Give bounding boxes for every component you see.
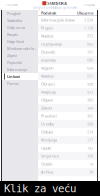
staticText: Zapisi [7,53,17,58]
staticText: Klik za veću [4,182,76,194]
staticText: 142 [87,145,93,151]
button[interactable]: Pregled [2,10,38,17]
staticText: Informacijski listovi [41,17,75,23]
staticText: 2 034 [84,17,93,23]
staticText: Pregled [7,11,20,16]
staticText: 842 [87,41,93,47]
button[interactable]: Informacije [2,66,38,73]
staticText: 74 [89,161,93,167]
staticText: Statistika [7,18,22,23]
staticText: 688 [87,57,93,63]
button[interactable]: Pomoc [2,80,38,87]
button[interactable]: Misljenja [38,136,97,144]
button[interactable]: Upute [38,144,97,152]
staticText: 973 [87,33,93,39]
staticText: STATISTIKA [47,1,67,6]
button[interactable]: Objave [38,96,97,104]
staticText: Uredbe [41,121,54,127]
staticText: Dozvole [41,49,55,55]
staticText: 551 [87,73,93,79]
staticText: Edge Vesti [7,39,24,44]
staticText: Ocjenjivanje [41,41,62,47]
staticText: POCETNA [6,3,18,7]
button[interactable]: Natjecaji [38,88,97,96]
button[interactable]: Odluke [38,128,97,136]
button[interactable]: Informacijski listovi [38,16,97,24]
staticText: 498 [87,81,93,87]
staticText: 301 [87,113,93,119]
button[interactable]: Ocjenjivanje [38,40,97,48]
staticText: Medunarodni brodski [7,46,38,51]
button[interactable]: Dozvole [38,48,97,56]
staticText: 38 [89,169,93,175]
staticText: Nadzor [41,33,54,39]
button[interactable]: Popisniki [2,59,38,66]
button[interactable]: Uredbe [38,120,97,128]
staticText: Popisniki [7,60,22,65]
staticText: PRIJAVA [84,3,95,7]
staticText: 604 [87,65,93,71]
staticText: Obrasci [41,81,55,87]
button[interactable]: Pravilnici [38,112,97,120]
staticText: 1 118 [84,25,93,31]
staticText: Pomoc [7,81,19,86]
staticText: Raspis [7,32,18,37]
button[interactable]: Registri [38,64,97,72]
button[interactable]: Zakoni [38,104,97,112]
staticText: Gdje se na [7,25,25,30]
button[interactable]: Izvjestaji [38,56,97,64]
button[interactable]: Linkovi [2,73,38,80]
staticText: 108 [87,153,93,159]
staticText: Odluke [41,129,53,135]
button[interactable]: Katalozi [38,72,97,80]
staticText: Linkovi [7,74,20,79]
button[interactable]: Statistika [2,17,38,24]
staticText: Arhiva [41,169,53,175]
staticText: Katalozi [41,73,54,79]
button[interactable]: Edge Vesti [2,38,38,45]
staticText: Natjecaji [41,89,56,95]
button[interactable]: Ostalo [38,160,97,168]
staticText: Pravilnici [41,113,57,119]
button[interactable]: Raspis [2,31,38,38]
staticText: Izvjestaji [41,57,56,63]
staticText: Smjernice [41,153,59,159]
button[interactable]: Arhiva [38,168,97,176]
button[interactable]: Medunarodni brodski [2,45,38,52]
staticText: Informacije [7,67,27,72]
button[interactable]: POCETNA [6,2,18,8]
staticText: pregled podataka po godinama [33,6,76,9]
button[interactable]: Zapisi [2,52,38,59]
staticText: Upute [41,145,51,151]
staticText: Ostalo [41,161,52,167]
button[interactable]: Smjernice [38,152,97,160]
button[interactable]: PRIJAVA [84,2,95,8]
staticText: 344 [87,105,93,111]
staticText: 214 [87,129,93,135]
staticText: Objave [41,97,53,103]
staticText: 177 [87,137,93,143]
staticText: 389 [87,97,93,103]
button[interactable]: Nadzor [38,32,97,40]
staticText: 761 [87,49,93,55]
staticText: Ukupno [77,10,93,16]
staticText: Zakoni [41,105,52,111]
staticText: 433 [87,89,93,95]
staticText: 268 [87,121,93,127]
staticText: Misljenja [41,137,57,143]
button[interactable]: Propisi [38,24,97,32]
staticText: Registri [41,65,54,71]
button[interactable]: Obrasci [38,80,97,88]
button[interactable]: Gdje se na [2,24,38,31]
staticText: Podatak [41,10,56,16]
staticText: Propisi [41,25,53,31]
